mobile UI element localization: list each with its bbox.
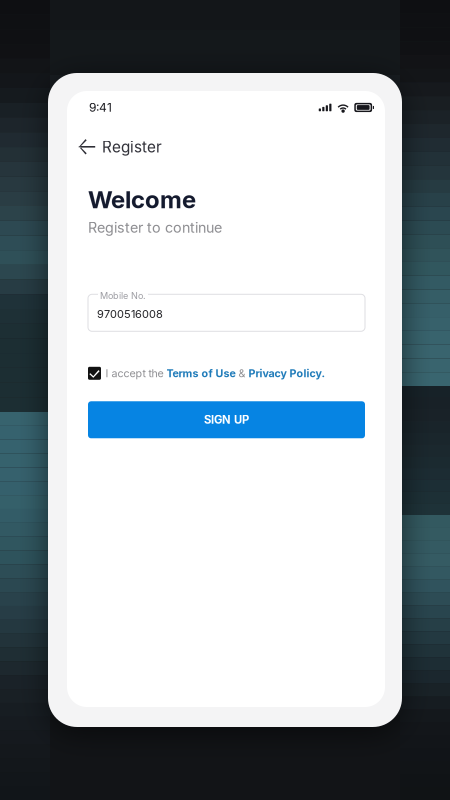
button[interactable]: Back xyxy=(72,133,102,161)
staticText: Register to continue xyxy=(88,219,222,236)
staticText: Welcome xyxy=(88,185,196,214)
staticText: Privacy Policy. xyxy=(248,367,325,380)
staticText: Terms of Use xyxy=(166,367,235,380)
staticText: 9:41 xyxy=(89,100,112,115)
staticText: I accept the xyxy=(105,367,166,380)
button[interactable]: SIGN UP xyxy=(88,401,365,438)
staticText: & xyxy=(235,367,248,380)
staticText: Register xyxy=(102,138,162,156)
staticText: SIGN UP xyxy=(204,413,249,427)
staticText: Mobile No. xyxy=(100,290,146,301)
button[interactable]: Terms of Use xyxy=(166,367,235,380)
button[interactable]: Privacy Policy. xyxy=(248,367,325,380)
staticText: 9700516008 xyxy=(97,307,163,320)
button[interactable]: Accept terms checkbox xyxy=(88,367,101,380)
